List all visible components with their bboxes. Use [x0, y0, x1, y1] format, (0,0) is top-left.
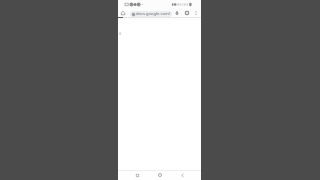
button[interactable]: Home	[119, 9, 127, 17]
button[interactable]: Voice search	[173, 9, 181, 17]
button[interactable]: More options	[192, 9, 200, 17]
button[interactable]: docs.google.com/forms	[130, 11, 172, 17]
button[interactable]: Tabs	[183, 9, 191, 17]
button[interactable]: Home	[156, 171, 164, 179]
staticText: docs.google.com/forms	[136, 11, 172, 17]
button[interactable]: Back	[178, 171, 186, 179]
button[interactable]: Recent apps	[133, 171, 141, 179]
